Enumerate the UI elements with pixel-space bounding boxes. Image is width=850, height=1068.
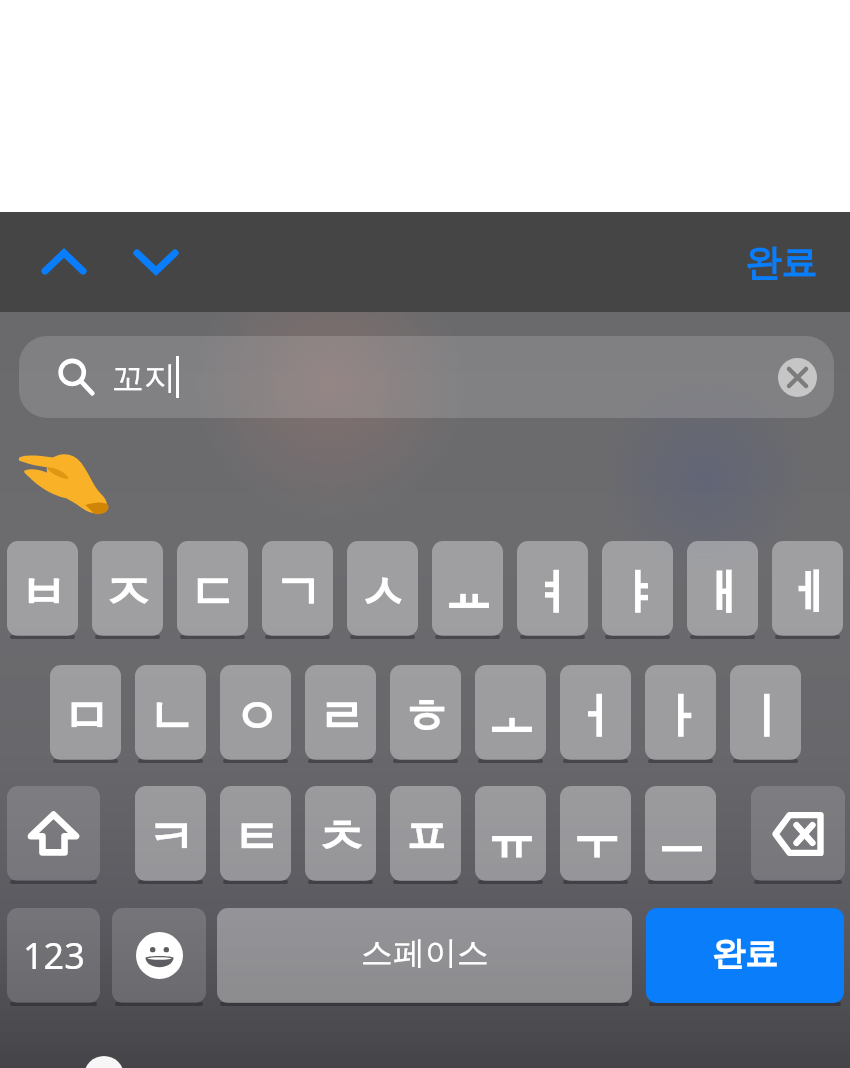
staticText: ㅣ	[742, 687, 790, 747]
staticText: ㅊ	[317, 808, 365, 868]
staticText: ㅜ	[572, 808, 620, 868]
staticText: ㄹ	[317, 687, 365, 747]
staticText: 스페이스	[361, 933, 489, 973]
staticText: 완료	[745, 240, 817, 285]
button[interactable]: ㅜ	[560, 786, 631, 885]
staticText: ㅋ	[147, 808, 195, 868]
button[interactable]: ㅠ	[475, 786, 546, 885]
staticText: ㅈ	[104, 563, 152, 623]
button[interactable]: ㅁ	[50, 665, 121, 764]
button[interactable]: ㅇ	[220, 665, 291, 764]
button[interactable]: Clear text	[778, 358, 817, 397]
staticText: 123	[23, 931, 85, 980]
staticText: ㅕ	[529, 563, 577, 623]
button[interactable]: Shift	[7, 786, 100, 885]
button[interactable]: ㅡ	[645, 786, 716, 885]
staticText: ㅍ	[402, 808, 450, 868]
button[interactable]: Next field	[120, 234, 192, 290]
button[interactable]: ㅅ	[347, 541, 418, 640]
staticText: ㅅ	[359, 563, 407, 623]
button[interactable]: ㅏ	[645, 665, 716, 764]
button[interactable]: ㅑ	[602, 541, 673, 640]
staticText: ㅌ	[232, 808, 280, 868]
button[interactable]: ㅂ	[7, 541, 78, 640]
button[interactable]: ㅌ	[220, 786, 291, 885]
staticText: ㅁ	[62, 687, 110, 747]
button[interactable]: ㅊ	[305, 786, 376, 885]
button[interactable]: ㅎ	[390, 665, 461, 764]
staticText: ㅐ	[699, 563, 747, 623]
staticText: ㄴ	[147, 687, 195, 747]
staticText: ㅗ	[487, 687, 535, 747]
staticText: ㅇ	[232, 687, 280, 747]
button[interactable]: Search field: 꼬지	[19, 336, 834, 418]
button[interactable]: ㄹ	[305, 665, 376, 764]
button[interactable]: ㅣ	[730, 665, 801, 764]
staticText: ㅑ	[614, 563, 662, 623]
staticText: ㅡ	[657, 808, 705, 868]
staticText: 꼬지	[112, 358, 176, 398]
staticText: ㅎ	[402, 687, 450, 747]
button[interactable]: Backspace	[751, 786, 845, 885]
button[interactable]: ㅈ	[92, 541, 163, 640]
staticText: ㄷ	[189, 563, 237, 623]
button[interactable]: ㅐ	[687, 541, 758, 640]
button[interactable]: ㄷ	[177, 541, 248, 640]
button[interactable]: ㅍ	[390, 786, 461, 885]
staticText: 완료	[712, 933, 778, 975]
button[interactable]: ㅋ	[135, 786, 206, 885]
button[interactable]: 스페이스	[217, 908, 632, 1007]
staticText: ㄱ	[274, 563, 322, 623]
button[interactable]: Emoji keyboard	[112, 908, 206, 1007]
button[interactable]: ㄴ	[135, 665, 206, 764]
button[interactable]: ㅗ	[475, 665, 546, 764]
staticText: ㅠ	[487, 808, 535, 868]
button[interactable]: ㅛ	[432, 541, 503, 640]
button[interactable]: ㅔ	[772, 541, 843, 640]
button[interactable]: ㅕ	[517, 541, 588, 640]
button[interactable]: ㄱ	[262, 541, 333, 640]
staticText: ㅔ	[784, 563, 832, 623]
button[interactable]: 123	[7, 908, 100, 1007]
button[interactable]: ㅓ	[560, 665, 631, 764]
staticText: ㅛ	[444, 563, 492, 623]
staticText: ㅓ	[572, 687, 620, 747]
staticText: ㅂ	[19, 563, 67, 623]
staticText: ㅏ	[657, 687, 705, 747]
button[interactable]: Previous field	[28, 234, 100, 290]
button[interactable]: 완료	[733, 230, 829, 295]
button[interactable]: 완료	[646, 908, 844, 1007]
